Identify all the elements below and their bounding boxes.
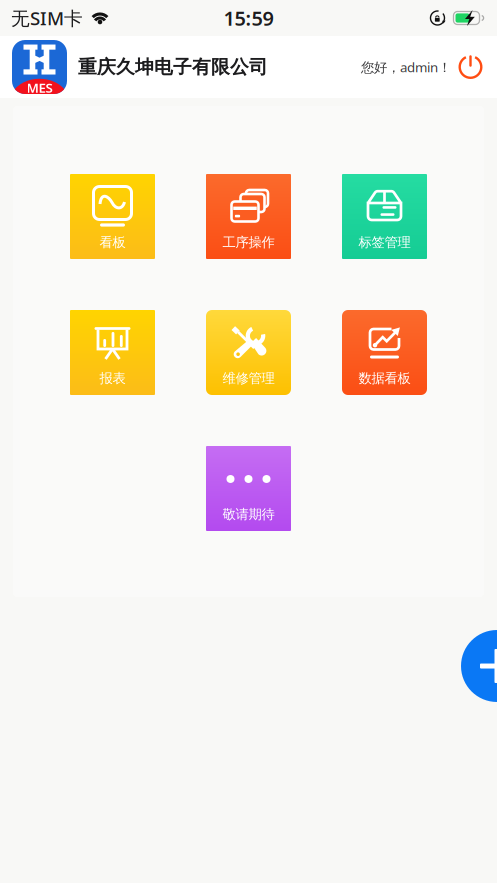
staticText: 敬请期待 (222, 506, 274, 522)
button[interactable]: 看板 (70, 174, 155, 259)
button[interactable]: 您好，admin！ (361, 54, 483, 79)
button[interactable]: 标签管理 (342, 174, 427, 259)
staticText: 15:59 (223, 5, 273, 31)
button[interactable]: 数据看板 (342, 310, 427, 395)
staticText: 报表 (99, 370, 125, 386)
staticText: 看板 (99, 234, 125, 250)
button[interactable]: 维修管理 (206, 310, 291, 395)
button[interactable]: 报表 (70, 310, 155, 395)
staticText: 无SIM卡 (11, 6, 83, 30)
button[interactable]: 敬请期待 (206, 446, 291, 531)
button[interactable]: 工序操作 (206, 174, 291, 259)
staticText: 维修管理 (222, 370, 274, 386)
staticText: 您好，admin！ (361, 58, 451, 76)
staticText: 工序操作 (222, 234, 274, 250)
staticText: 重庆久坤电子有限公司 (78, 55, 268, 78)
button[interactable]: Add (461, 630, 497, 702)
staticText: 数据看板 (358, 370, 410, 386)
staticText: MES (26, 79, 52, 96)
staticText: 标签管理 (358, 234, 410, 250)
